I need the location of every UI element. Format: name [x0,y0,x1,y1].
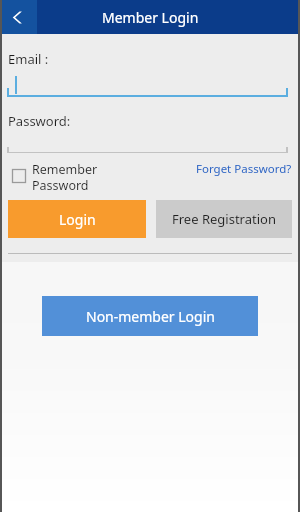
staticText: Remember Password [32,161,98,193]
staticText: Password: [8,112,71,130]
button[interactable]: Login [8,200,146,238]
button[interactable]: Back [0,0,37,34]
staticText: Free Registration [172,210,276,228]
staticText: Login [59,210,96,229]
button[interactable]: Non-member Login [42,296,258,336]
staticText: Non-member Login [86,307,215,326]
button[interactable]: Remember Password [6,158,121,194]
staticText: Member Login [102,8,199,27]
staticText: Forget Password? [196,161,292,177]
button[interactable]: Forget Password? [190,160,292,178]
staticText: Email : [8,50,49,68]
button[interactable]: Free Registration [156,200,292,238]
